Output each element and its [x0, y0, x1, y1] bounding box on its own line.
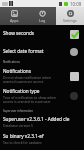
staticText: Select date format	[3, 48, 44, 54]
button[interactable]: Log	[28, 7, 56, 25]
staticText: Show seconds	[3, 30, 35, 36]
staticText: Type of notification to show when	[3, 95, 56, 99]
staticText: Do not show notification when	[3, 75, 51, 79]
staticText: access is granted to superuser	[3, 99, 51, 103]
button[interactable]: Open options	[70, 48, 78, 56]
staticText: Notification type	[3, 88, 40, 94]
staticText: Su binary v2.3.1-ef	[3, 133, 44, 139]
button[interactable]: Select date format	[0, 47, 84, 55]
staticText: Superuser v2.3.6.1 - Added cle	[3, 116, 70, 122]
staticText: Database version 5	[3, 123, 33, 127]
button[interactable]: Toggle setting	[70, 72, 79, 81]
button[interactable]: Open options	[70, 92, 78, 100]
staticText: Notifications	[3, 68, 31, 74]
button[interactable]: Notifications	[0, 67, 84, 84]
button[interactable]: Su binary v2.3.1-ef	[0, 132, 84, 145]
staticText: granted superuser access	[3, 79, 44, 83]
button[interactable]: Toggle setting	[70, 30, 79, 39]
button[interactable]: Superuser v2.3.6.1 - Added cle	[0, 115, 84, 128]
staticText: Apps	[10, 18, 19, 23]
staticText: Superuser information	[3, 109, 33, 113]
staticText: Settings	[63, 18, 77, 23]
button[interactable]: Notification type	[0, 87, 84, 104]
button[interactable]: Settings	[56, 7, 84, 25]
staticText: Notifications	[3, 60, 20, 64]
staticText: 10:09	[70, 1, 82, 7]
button[interactable]: Apps	[0, 7, 28, 25]
button[interactable]: Show seconds	[0, 29, 84, 37]
staticText: Tap to check for updates	[3, 140, 42, 144]
staticText: Log	[39, 18, 46, 23]
